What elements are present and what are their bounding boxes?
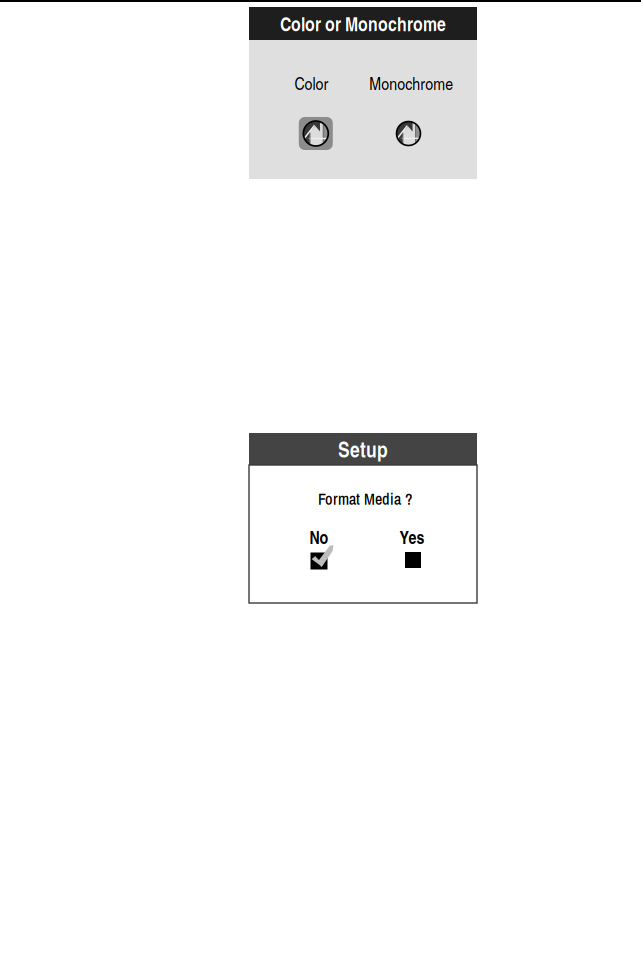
staticText: Monochrome [369, 71, 453, 95]
staticText: Color or Monochrome [280, 10, 446, 37]
button[interactable]: Color [294, 116, 338, 150]
button[interactable]: No [296, 530, 342, 572]
button[interactable]: Yes [389, 530, 435, 572]
staticText: Yes [399, 525, 424, 549]
staticText: No [309, 525, 328, 549]
staticText: Format Media ? [318, 488, 413, 510]
staticText: Color [294, 71, 328, 95]
button[interactable]: Monochrome [386, 116, 430, 150]
staticText: Setup [338, 434, 388, 464]
